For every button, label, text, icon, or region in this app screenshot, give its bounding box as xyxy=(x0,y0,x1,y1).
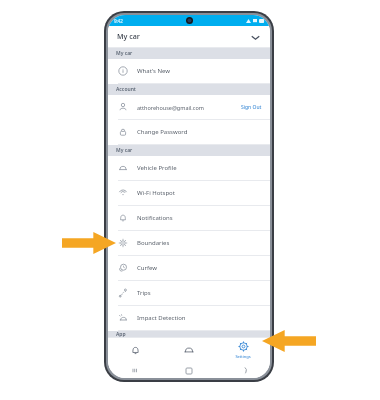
button[interactable]: Wi-Fi Hotspot xyxy=(108,181,270,205)
button[interactable]: Change Password xyxy=(108,120,270,144)
staticText: Wi-Fi Hotspot xyxy=(137,189,175,197)
staticText: Curfew xyxy=(137,264,158,272)
button[interactable]: Curfew xyxy=(108,256,270,280)
button[interactable]: Trips xyxy=(108,281,270,305)
staticText: atthorehouse@gmail.com xyxy=(137,104,241,111)
staticText: Trips xyxy=(137,289,151,297)
button[interactable]: Home xyxy=(162,363,216,378)
button[interactable]: My car xyxy=(108,26,270,48)
staticText: Settings xyxy=(235,354,251,359)
staticText: My car xyxy=(116,50,133,57)
button[interactable]: Vehicle Profile xyxy=(108,156,270,180)
button[interactable]: Boundaries xyxy=(108,231,270,255)
button[interactable]: What's New xyxy=(108,59,270,83)
staticText: My car xyxy=(116,147,133,154)
button[interactable]: Sign Out xyxy=(241,104,262,111)
staticText: Change Password xyxy=(137,128,188,136)
button[interactable]: Notifications xyxy=(108,206,270,230)
staticText: Vehicle Profile xyxy=(137,164,177,172)
button[interactable]: Impact Detection xyxy=(108,306,270,330)
staticText: My car xyxy=(117,32,140,42)
button[interactable]: My car xyxy=(162,337,216,363)
button[interactable]: atthorehouse@gmail.com xyxy=(108,95,270,119)
staticText: Boundaries xyxy=(137,239,170,247)
staticText: Account xyxy=(116,86,136,93)
staticText: Notifications xyxy=(137,214,173,222)
staticText: App xyxy=(116,331,126,337)
button[interactable]: Back xyxy=(216,363,270,378)
button[interactable]: Recents xyxy=(108,363,162,378)
staticText: 9:42 xyxy=(114,18,123,24)
staticText: Impact Detection xyxy=(137,314,186,322)
other: Expand xyxy=(250,32,261,43)
button[interactable]: Settings xyxy=(216,337,270,363)
button[interactable]: Notifications xyxy=(108,337,162,363)
staticText: What's New xyxy=(137,67,171,75)
